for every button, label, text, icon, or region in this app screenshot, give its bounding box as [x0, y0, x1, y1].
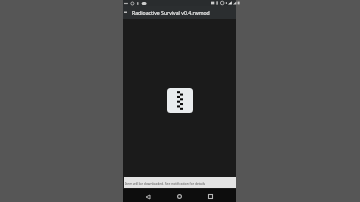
button[interactable]: Recent apps: [202, 190, 218, 202]
button[interactable]: [167, 88, 193, 113]
button[interactable]: Item will be downloaded. See notificatio…: [124, 177, 236, 188]
button[interactable]: Back: [140, 190, 156, 202]
staticText: Item will be downloaded. See notificatio…: [125, 181, 206, 185]
staticText: Radioactive Survival v0.4.rwmod: [132, 9, 210, 16]
button[interactable]: Home: [171, 190, 187, 202]
button[interactable]: Navigate up: [123, 6, 132, 19]
